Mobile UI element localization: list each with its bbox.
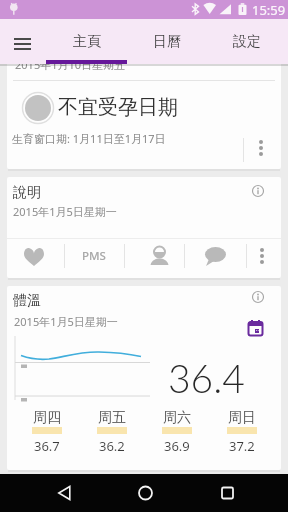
button[interactable]: 日曆 [127, 19, 207, 64]
staticText: 36.9 [164, 437, 190, 455]
staticText: 不宜受孕日期 [58, 95, 178, 119]
staticText: 周六 [163, 409, 191, 427]
button[interactable] [8, 29, 38, 55]
button[interactable] [216, 411, 268, 455]
button[interactable]: 設定 [207, 19, 287, 64]
button[interactable] [250, 244, 274, 270]
staticText: 周日 [228, 409, 256, 427]
button[interactable] [86, 411, 138, 455]
staticText: 主頁 [73, 33, 101, 51]
button[interactable] [151, 411, 203, 455]
button[interactable] [250, 134, 274, 164]
button[interactable] [210, 476, 244, 510]
staticText: 15:59 [252, 1, 286, 19]
button[interactable] [20, 245, 48, 269]
staticText: 36.4 [168, 355, 245, 402]
button[interactable]: 主頁 [47, 19, 127, 64]
button[interactable] [250, 183, 266, 199]
staticText: 周五 [98, 409, 126, 427]
staticText: 生育窗口期: 1月11日至1月17日 [12, 131, 166, 146]
staticText: 2015年1月5日星期一 [13, 204, 117, 219]
staticText: 體溫 [13, 292, 41, 310]
button[interactable]: 2015年1月10日星期五 [7, 50, 281, 169]
staticText: 2015年1月10日星期五 [15, 57, 126, 72]
button[interactable]: PMS [74, 244, 114, 268]
button[interactable] [250, 289, 266, 305]
staticText: 說明 [13, 184, 41, 202]
staticText: 37.2 [229, 437, 255, 455]
button[interactable] [21, 411, 73, 455]
staticText: 日曆 [153, 33, 181, 51]
staticText: PMS [82, 248, 106, 264]
button[interactable] [128, 476, 162, 510]
staticText: 36.7 [34, 437, 60, 455]
button[interactable] [201, 245, 229, 269]
staticText: 2015年1月5日星期一 [14, 314, 118, 329]
button[interactable] [247, 320, 265, 338]
button[interactable] [48, 476, 82, 510]
staticText: 周四 [33, 409, 61, 427]
staticText: 設定 [233, 33, 261, 51]
staticText: 36.2 [99, 437, 125, 455]
button[interactable] [148, 245, 172, 269]
